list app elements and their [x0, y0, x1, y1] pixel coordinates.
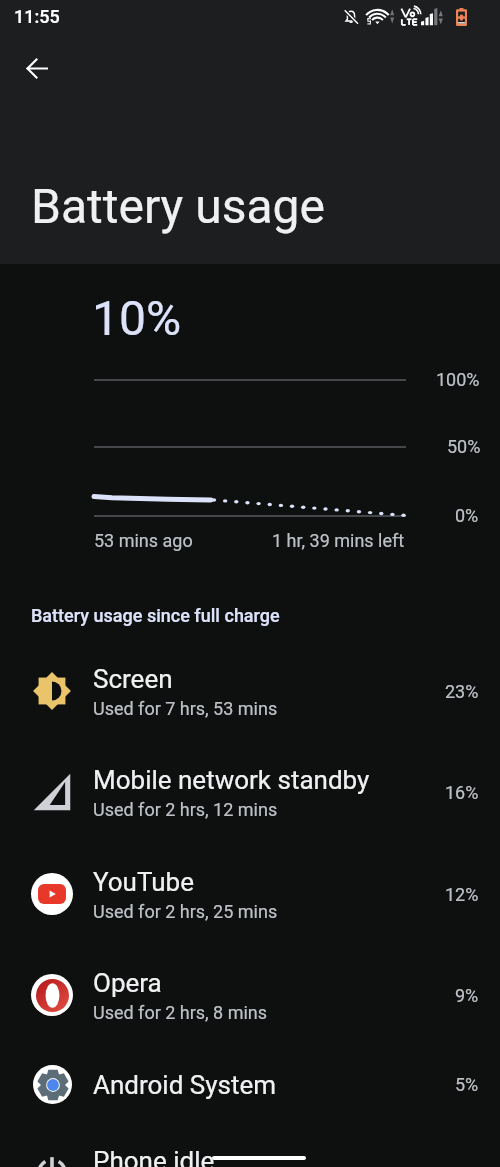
- staticText: Used for 2 hrs, 25 mins: [93, 901, 278, 922]
- button[interactable]: Screen: [0, 633, 500, 734]
- staticText: Phone idle: [93, 1146, 215, 1167]
- staticText: Screen: [93, 664, 173, 694]
- staticText: 9%: [455, 985, 479, 1006]
- staticText: Opera: [93, 968, 162, 998]
- staticText: Battery usage: [31, 178, 325, 234]
- staticText: 5%: [455, 1074, 479, 1095]
- button[interactable]: Phone idle: [0, 1115, 500, 1167]
- staticText: YouTube: [93, 867, 194, 897]
- staticText: 12%: [445, 884, 479, 905]
- staticText: 1 hr, 39 mins left: [272, 530, 405, 551]
- staticText: Used for 2 hrs, 12 mins: [93, 799, 278, 820]
- staticText: Android System: [93, 1070, 277, 1100]
- staticText: Used for 7 hrs, 53 mins: [93, 698, 278, 719]
- button[interactable]: Back: [16, 47, 58, 89]
- staticText: Mobile network standby: [93, 765, 370, 795]
- staticText: 53 mins ago: [94, 530, 193, 551]
- staticText: 10%: [92, 290, 182, 346]
- staticText: 100%: [436, 369, 480, 390]
- staticText: 50%: [447, 436, 481, 457]
- button[interactable]: Opera: [0, 937, 500, 1038]
- staticText: 11:55: [14, 6, 60, 27]
- staticText: 0%: [455, 505, 479, 526]
- staticText: Used for 2 hrs, 8 mins: [93, 1002, 268, 1023]
- staticText: 23%: [445, 681, 479, 702]
- button[interactable]: Android System: [0, 1039, 500, 1115]
- button[interactable]: Mobile network standby: [0, 734, 500, 835]
- staticText: 16%: [445, 782, 479, 803]
- button[interactable]: YouTube: [0, 836, 500, 937]
- staticText: Battery usage since full charge: [31, 605, 280, 626]
